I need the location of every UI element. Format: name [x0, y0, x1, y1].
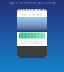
staticText: Forgot password?: [20, 41, 43, 44]
staticText: Welcome back: [18, 6, 46, 11]
staticText: Sign in to continue your journey: [9, 1, 55, 4]
staticText: Sign in to your account: [21, 13, 42, 20]
